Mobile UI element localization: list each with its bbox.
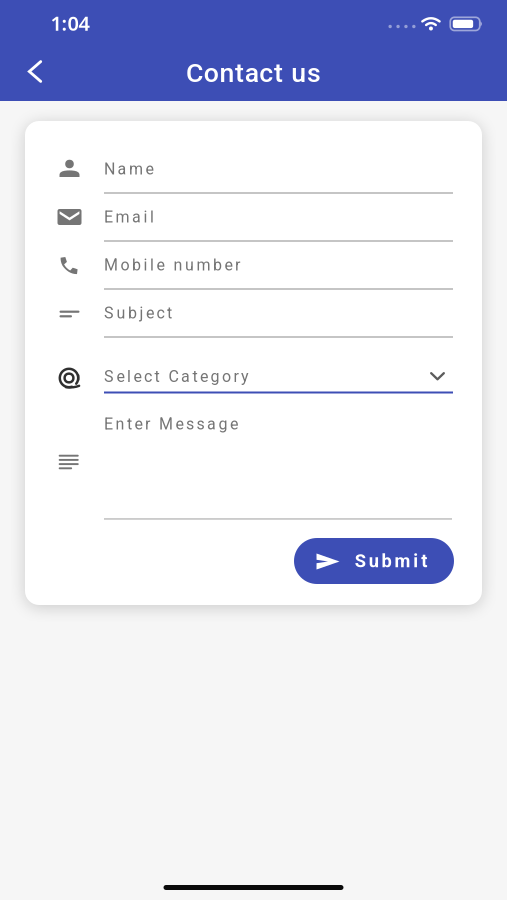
button[interactable]: Mobile number [104, 242, 453, 290]
staticText: m [394, 550, 410, 572]
staticText: t [192, 367, 197, 386]
staticText: C [168, 367, 178, 386]
staticText: t [274, 57, 283, 89]
staticText: n [219, 57, 234, 89]
staticText: Subject [104, 304, 172, 322]
button[interactable]: Back [13, 49, 57, 93]
staticText: s [307, 57, 321, 89]
staticText: t [154, 367, 159, 386]
staticText: o [204, 57, 219, 89]
staticText: Enter Message [104, 415, 238, 433]
staticText: c [144, 367, 152, 386]
staticText: t [421, 550, 427, 572]
button[interactable]: Name [104, 146, 453, 194]
staticText: Email [104, 208, 154, 226]
staticText: u [369, 550, 379, 572]
staticText: Name [104, 160, 153, 178]
staticText: e [116, 367, 124, 386]
staticText: r [233, 367, 238, 386]
staticText: i [413, 550, 418, 572]
button[interactable]: Email [104, 194, 453, 242]
staticText: u [291, 57, 306, 89]
button[interactable]: S [104, 361, 453, 393]
staticText: e [133, 367, 141, 386]
button[interactable]: Enter Message [104, 409, 452, 520]
staticText: C [186, 57, 203, 89]
staticText: S [355, 550, 366, 572]
staticText: e [200, 367, 208, 386]
staticText: a [245, 57, 259, 89]
staticText: t [235, 57, 244, 89]
staticText: c [259, 57, 273, 89]
staticText: b [382, 550, 392, 572]
staticText: S [104, 367, 114, 386]
staticText: 1:04 [50, 10, 89, 36]
staticText: y [241, 367, 249, 386]
staticText: a [181, 367, 190, 386]
staticText: l [127, 367, 131, 386]
button[interactable]: Subject [104, 290, 453, 338]
staticText: g [210, 367, 219, 386]
staticText: o [222, 367, 231, 386]
staticText: Mobile number [104, 256, 240, 274]
button[interactable]: S [294, 538, 454, 584]
